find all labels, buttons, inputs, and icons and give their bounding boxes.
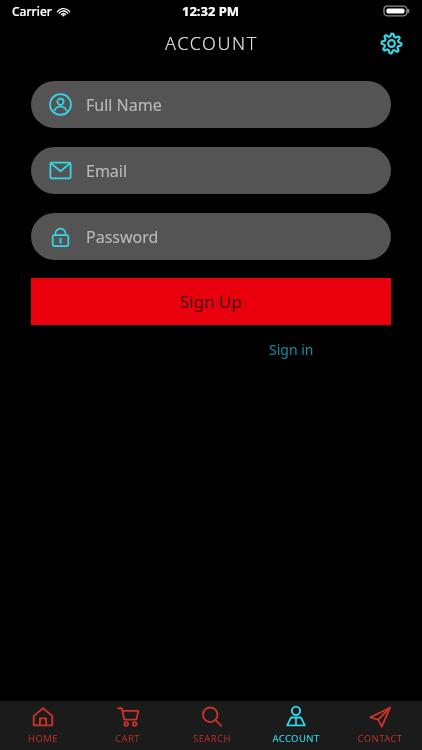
- staticText: Carrier: [12, 3, 52, 19]
- button[interactable]: Settings: [374, 26, 408, 60]
- staticText: CART: [115, 732, 140, 745]
- button[interactable]: CONTACT: [338, 701, 422, 750]
- button[interactable]: Password: [31, 213, 391, 260]
- button[interactable]: CART: [85, 701, 170, 750]
- staticText: Password: [86, 226, 159, 248]
- button[interactable]: Full Name: [31, 81, 391, 128]
- staticText: CONTACT: [357, 732, 403, 745]
- staticText: SEARCH: [193, 732, 231, 745]
- staticText: Sign in: [269, 340, 314, 359]
- button[interactable]: ACCOUNT: [254, 701, 338, 750]
- staticText: 12:32 PM: [182, 2, 240, 20]
- button[interactable]: Sign in: [265, 337, 318, 362]
- staticText: ACCOUNT: [272, 732, 320, 745]
- button[interactable]: HOME: [0, 701, 85, 750]
- staticText: Full Name: [86, 94, 162, 116]
- staticText: Email: [86, 160, 128, 182]
- staticText: HOME: [28, 732, 58, 745]
- button[interactable]: Email: [31, 147, 391, 194]
- staticText: ACCOUNT: [165, 31, 258, 56]
- button[interactable]: SEARCH: [170, 701, 254, 750]
- staticText: Sign Up: [180, 290, 242, 313]
- button[interactable]: Sign Up: [31, 278, 391, 325]
